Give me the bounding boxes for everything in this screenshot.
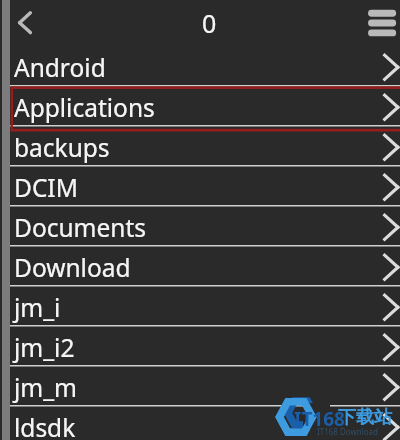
button[interactable]: Android xyxy=(0,46,400,86)
staticText: Applications xyxy=(14,91,155,124)
staticText: 下载站 xyxy=(338,406,392,429)
staticText: jm_m xyxy=(14,371,78,404)
staticText: jm_i2 xyxy=(14,331,75,364)
staticText: IT168 xyxy=(294,406,345,432)
staticText: jm_i xyxy=(14,291,61,324)
button[interactable]: Applications xyxy=(0,86,400,126)
button[interactable]: jm_m xyxy=(0,366,400,406)
button[interactable]: ldsdk xyxy=(0,406,400,440)
button[interactable]: Documents xyxy=(0,206,400,246)
button[interactable]: backups xyxy=(0,126,400,166)
button[interactable]: Back xyxy=(0,0,50,46)
staticText: Android xyxy=(14,51,106,84)
staticText: ldsdk xyxy=(14,411,76,440)
button[interactable]: DCIM xyxy=(0,166,400,206)
staticText: Documents xyxy=(14,211,147,244)
button[interactable]: jm_i2 xyxy=(0,326,400,366)
staticText: Download xyxy=(14,251,131,284)
staticText: DCIM xyxy=(14,171,78,204)
staticText: backups xyxy=(14,131,110,164)
button[interactable]: Download xyxy=(0,246,400,286)
staticText: 0 xyxy=(202,6,217,40)
staticText: IT168 Download xyxy=(317,426,379,437)
button[interactable]: Menu xyxy=(350,0,400,46)
button[interactable]: jm_i xyxy=(0,286,400,326)
